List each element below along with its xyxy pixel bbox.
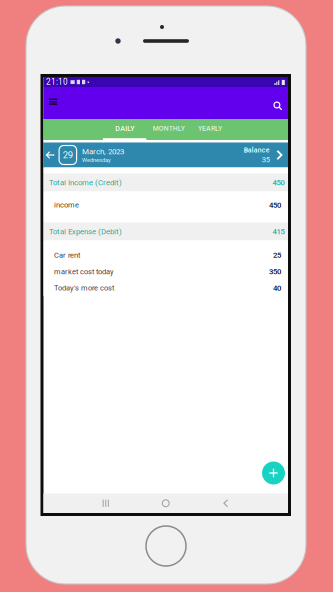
button[interactable]: Menu bbox=[43, 87, 65, 113]
staticText: 21:10 bbox=[46, 77, 68, 87]
staticText: 40 bbox=[273, 283, 281, 293]
button[interactable]: income bbox=[43, 197, 288, 213]
staticText: Wednesday bbox=[82, 157, 111, 163]
staticText: Car rent bbox=[54, 251, 80, 259]
staticText: Total Income (Credit) bbox=[49, 178, 122, 187]
staticText: March, 2023 bbox=[82, 147, 124, 156]
button[interactable]: market cost today bbox=[43, 263, 288, 280]
staticText: Total Expense (Debit) bbox=[49, 227, 122, 236]
button[interactable]: Recent apps bbox=[93, 494, 119, 513]
button[interactable]: MONTHLY bbox=[146, 119, 191, 140]
button[interactable]: YEARLY bbox=[191, 119, 229, 140]
button[interactable]: Car rent bbox=[43, 247, 288, 263]
button[interactable]: Back bbox=[213, 494, 239, 513]
staticText: MONTHLY bbox=[153, 124, 185, 132]
staticText: 25 bbox=[273, 251, 281, 260]
staticText: DAILY bbox=[115, 124, 134, 133]
staticText: 450 bbox=[269, 200, 281, 210]
button[interactable]: 29 bbox=[43, 142, 288, 167]
button[interactable]: Add transaction bbox=[258, 458, 288, 488]
button[interactable]: Today's more cost bbox=[43, 280, 288, 296]
staticText: income bbox=[54, 201, 79, 209]
staticText: 35 bbox=[262, 155, 270, 164]
staticText: 350 bbox=[269, 267, 281, 276]
staticText: market cost today bbox=[54, 267, 114, 276]
button[interactable]: DAILY bbox=[103, 119, 146, 140]
staticText: 29 bbox=[63, 149, 73, 161]
button[interactable]: Home bbox=[153, 494, 179, 513]
staticText: Balance bbox=[244, 146, 270, 154]
staticText: 450 bbox=[272, 178, 284, 187]
staticText: Today's more cost bbox=[54, 284, 114, 292]
staticText: 415 bbox=[272, 227, 284, 236]
button[interactable]: Search bbox=[265, 87, 288, 119]
staticText: YEARLY bbox=[198, 124, 222, 132]
